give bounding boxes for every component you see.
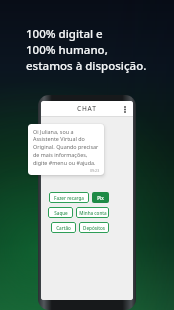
button[interactable]: More options	[120, 104, 130, 114]
staticText: Fazer recarga	[54, 195, 84, 201]
staticText: 100% digital e	[26, 26, 103, 42]
staticText: Minha conta	[79, 210, 107, 216]
staticText: Depósitos	[83, 225, 105, 231]
button[interactable]: Pix	[92, 192, 109, 203]
staticText: 09:23	[90, 168, 100, 173]
staticText: estamos à disposição.	[26, 58, 147, 74]
staticText: Saque	[54, 210, 68, 216]
button[interactable]: Fazer recarga	[49, 192, 89, 203]
staticText: CHAT	[77, 104, 97, 113]
staticText: 100% humano,	[26, 42, 108, 58]
button[interactable]: Minha conta	[76, 207, 109, 218]
button[interactable]: Depósitos	[79, 222, 109, 233]
staticText: Oi Juliana, sou a Assistente Virtual do …	[33, 128, 100, 167]
staticText: Pix	[97, 195, 104, 201]
button[interactable]: Oi Juliana, sou a Assistente Virtual do …	[28, 124, 104, 175]
button[interactable]: Saque	[48, 207, 73, 218]
staticText: Cartão	[56, 225, 71, 231]
button[interactable]: Cartão	[51, 222, 76, 233]
